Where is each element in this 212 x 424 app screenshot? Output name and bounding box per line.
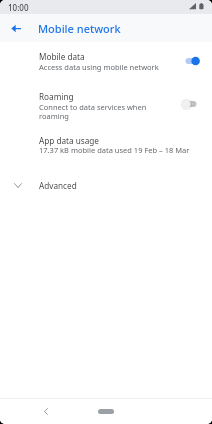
- staticText: Roaming: [39, 91, 74, 102]
- staticText: 10:00: [8, 2, 29, 13]
- staticText: Mobile data: [39, 51, 85, 62]
- button[interactable]: Turn on: [181, 97, 201, 111]
- button[interactable]: Advanced: [0, 174, 212, 196]
- button[interactable]: Back: [37, 402, 55, 420]
- staticText: 17.37 kB mobile data used 19 Feb – 18 Ma…: [39, 145, 190, 155]
- staticText: App data usage: [39, 135, 99, 146]
- staticText: Advanced: [39, 180, 77, 191]
- staticText: Mobile network: [38, 21, 121, 36]
- button[interactable]: Back: [6, 18, 26, 38]
- staticText: Connect to data services when roaming: [39, 102, 147, 121]
- button[interactable]: App data usage: [0, 128, 212, 160]
- staticText: Access data using mobile network: [39, 62, 159, 72]
- button[interactable]: Mobile data: [0, 44, 212, 78]
- button[interactable]: Roaming: [0, 85, 212, 123]
- button[interactable]: Turn off: [181, 54, 201, 68]
- button[interactable]: Home: [98, 409, 114, 414]
